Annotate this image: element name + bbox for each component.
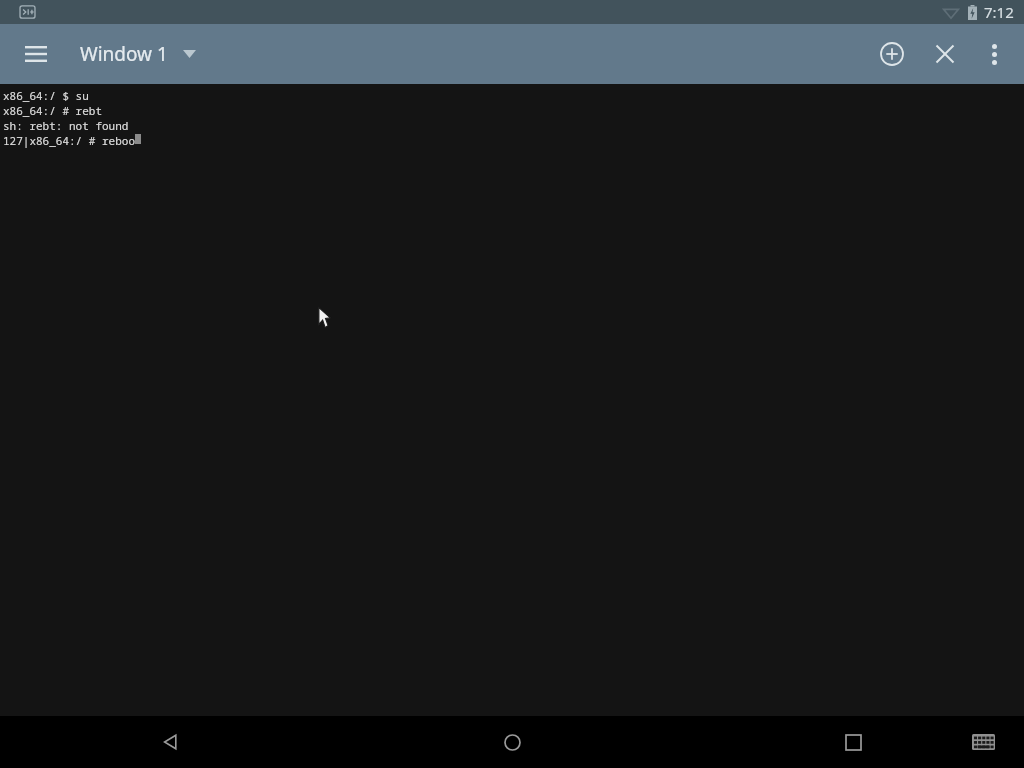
staticText: 7:12 — [984, 2, 1014, 22]
staticText: sh: rebt: not found — [3, 118, 129, 133]
button[interactable]: Open navigation drawer — [12, 24, 60, 84]
button[interactable]: Switch input method — [963, 722, 1003, 762]
staticText: x86_64:/ $ su — [3, 88, 89, 103]
button[interactable]: Back — [0, 716, 342, 768]
button[interactable]: Recent apps — [683, 716, 1024, 768]
button[interactable]: Close window — [920, 24, 970, 84]
button[interactable]: New window — [864, 24, 920, 84]
button[interactable]: Window 1 — [80, 24, 210, 84]
staticText: x86_64:/ # rebt — [3, 103, 102, 118]
button[interactable]: More options — [970, 24, 1018, 84]
staticText: Window 1 — [80, 41, 168, 67]
button[interactable]: Home — [342, 716, 683, 768]
staticText: 127|x86_64:/ # reboo — [3, 133, 135, 148]
